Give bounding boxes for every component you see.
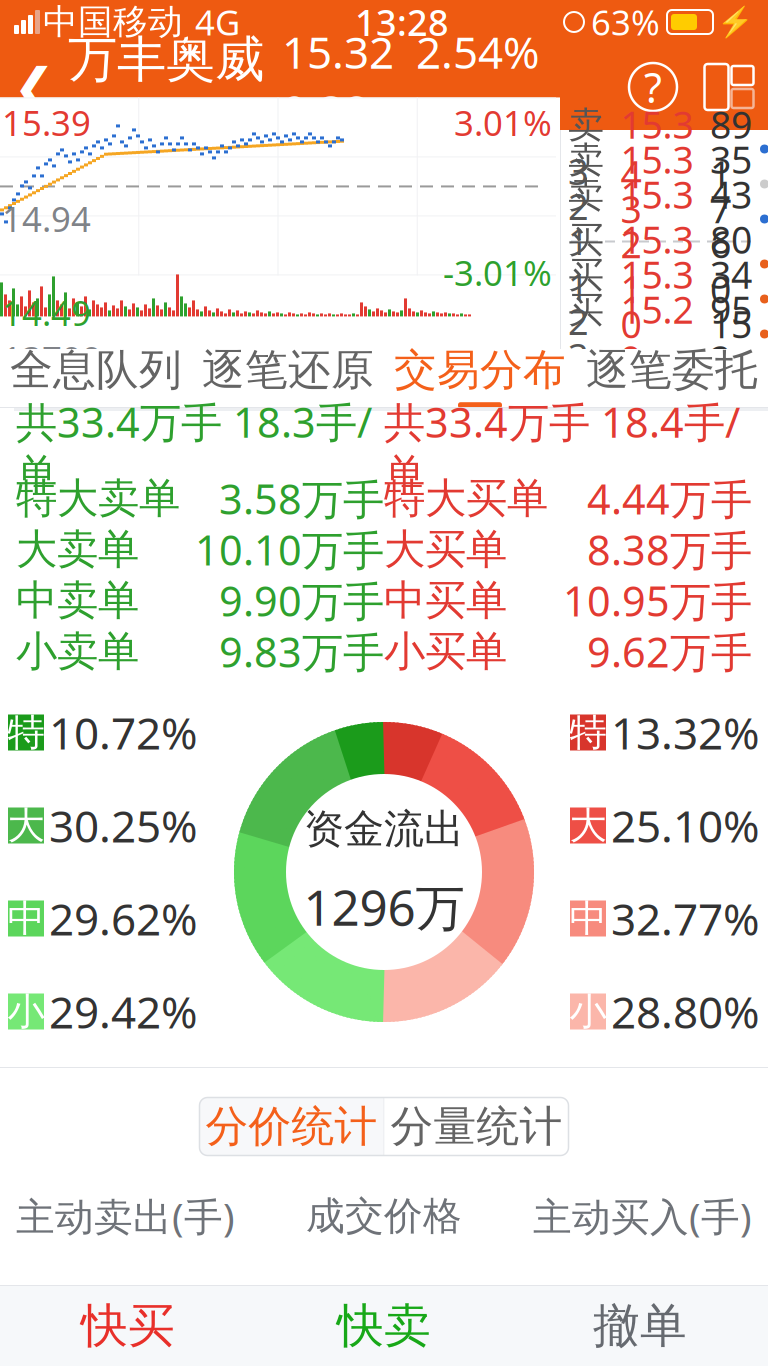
staticText: 14.94 (2, 195, 91, 241)
button[interactable]: Rotate screen (690, 44, 768, 130)
staticText: 特大买单 (384, 473, 548, 524)
staticText: 9.90万手 (219, 573, 384, 628)
staticText: 特 (569, 710, 606, 755)
staticText: 交易分布 (394, 344, 566, 396)
staticText: 共33.4万手 18.4手/单 (384, 394, 740, 500)
staticText: 小 (569, 989, 606, 1034)
staticText: 14.49 (2, 289, 91, 335)
staticText: 主动买入(手) (533, 1190, 752, 1242)
staticText: 小 (7, 989, 44, 1034)
button[interactable]: 交易分布 (384, 349, 576, 407)
button[interactable]: Back (0, 44, 68, 130)
staticText: ? (644, 60, 662, 114)
staticText: 中 (7, 896, 44, 941)
staticText: 分价统计 (205, 1100, 377, 1153)
staticText: 中卖单 (16, 575, 139, 626)
staticText: 436 (710, 169, 752, 269)
staticText: 成交价格 (306, 1192, 462, 1240)
staticText: 15.33 (620, 134, 693, 234)
button[interactable]: 撤单 (512, 1286, 768, 1366)
staticText: 全息队列 (10, 344, 182, 396)
staticText: 32.77% (611, 889, 760, 948)
staticText: 4.44万手 (587, 471, 752, 526)
staticText: 30.25% (49, 796, 198, 855)
staticText: 大 (569, 803, 606, 848)
staticText: 卖1 (568, 173, 604, 265)
staticText: 1296万 (303, 874, 464, 939)
staticText: 63% (591, 0, 660, 45)
staticText: 15.34 (620, 99, 693, 199)
button[interactable]: 逐笔委托 (576, 349, 768, 407)
staticText: 大卖单 (16, 524, 139, 575)
staticText: 952 (710, 284, 752, 384)
staticText: 15.29 (620, 284, 693, 384)
staticText: 8.38万手 (587, 522, 752, 577)
button[interactable]: 分价统计 (199, 1097, 383, 1155)
staticText: 13799 (2, 335, 102, 381)
staticText: 10.95万手 (563, 573, 752, 628)
staticText: 25.10% (611, 796, 760, 855)
staticText: 共33.4万手 18.3手/单 (16, 394, 372, 500)
button[interactable]: 全息队列 (0, 349, 192, 407)
staticText: 逐笔还原 (202, 344, 374, 396)
staticText: 中国移动 (43, 1, 183, 43)
staticText: 10.72% (49, 703, 198, 762)
button[interactable]: 逐笔还原 (192, 349, 384, 407)
staticText: 快买 (81, 1297, 175, 1355)
staticText: ❮ (13, 58, 55, 116)
staticText: 卖2 (568, 138, 604, 230)
staticText: 中买单 (384, 575, 507, 626)
staticText: 买2 (568, 253, 604, 345)
staticText: 小卖单 (16, 626, 139, 677)
staticText: 小买单 (384, 626, 507, 677)
staticText: 3.58万手 (219, 471, 384, 526)
staticText: 卖3 (568, 103, 604, 195)
staticText: -3.01% (443, 249, 552, 295)
staticText: 800 (710, 214, 752, 314)
staticText: 002085 (68, 90, 212, 145)
staticText: 撤单 (593, 1297, 687, 1355)
staticText: 买1 (568, 218, 604, 310)
staticText: 15.31 (620, 214, 693, 314)
staticText: 10.10万手 (195, 522, 384, 577)
staticText: 9.62万手 (587, 624, 752, 679)
staticText: 29.42% (49, 982, 198, 1041)
staticText: 13:28 (355, 0, 449, 46)
staticText: 357 (710, 134, 752, 234)
staticText: 28.80% (611, 982, 760, 1041)
staticText: ⚡ (717, 5, 754, 39)
staticText: 中 (569, 896, 606, 941)
staticText: 主动卖出(手) (16, 1190, 235, 1242)
staticText: 9.83万手 (219, 624, 384, 679)
staticText: 大买单 (384, 524, 507, 575)
staticText: 15.32 2.54% 0.38 (282, 23, 551, 139)
staticText: 资金流出 (304, 805, 464, 854)
staticText: 15.32 (620, 169, 693, 269)
staticText: 特 (7, 710, 44, 755)
staticText: 快卖 (337, 1297, 431, 1355)
button[interactable]: 快卖 (256, 1286, 512, 1366)
staticText: 逐笔委托 (586, 344, 758, 396)
button[interactable]: Help (616, 44, 690, 130)
staticText: 13.32% (611, 703, 760, 762)
staticText: 特大卖单 (16, 473, 180, 524)
button[interactable]: 分量统计 (384, 1097, 568, 1155)
staticText: 29.62% (49, 889, 198, 948)
staticText: 大 (7, 803, 44, 848)
staticText: 15.30 (620, 249, 693, 349)
button[interactable]: 快买 (0, 1286, 256, 1366)
staticText: 分量统计 (390, 1100, 562, 1153)
staticText: 买3 (568, 288, 604, 380)
staticText: 3.01% (454, 99, 552, 145)
staticText: 891 (710, 99, 752, 199)
staticText: 万丰奥威 (68, 29, 264, 90)
staticText: 15.39 (2, 99, 91, 145)
staticText: 4G (195, 0, 240, 45)
staticText: 3415 (710, 249, 752, 349)
